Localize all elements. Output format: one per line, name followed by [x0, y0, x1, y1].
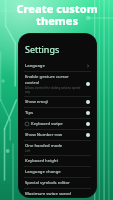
button[interactable]: Keyboard height [19, 156, 96, 167]
button[interactable]: Tips [19, 108, 96, 119]
staticText: Show emoji [25, 99, 49, 105]
staticText: Language change [25, 169, 61, 175]
staticText: Settings [25, 43, 60, 55]
staticText: Tips [25, 110, 34, 116]
staticText: Create custom themes [16, 1, 98, 28]
staticText: Enable gesture cursor control [25, 74, 83, 86]
staticText: Left [25, 149, 31, 153]
staticText: Allows control the sliding actions speed… [25, 86, 83, 94]
button[interactable]: One handed mode [19, 141, 96, 156]
staticText: Language [25, 63, 45, 69]
button[interactable]: Enable gesture cursor control [19, 72, 96, 97]
button[interactable]: Show emoji [19, 97, 96, 108]
staticText: Maximum swipe speed [25, 191, 71, 195]
staticText: Keyboard swipe [31, 121, 63, 127]
button[interactable]: Maximum swipe speed [19, 189, 96, 197]
staticText: Show Number row [25, 132, 63, 138]
button[interactable]: Language change [19, 167, 96, 178]
staticText: Special symbols editor [25, 180, 70, 186]
button[interactable]: Language [19, 61, 96, 72]
staticText: Keyboard height [25, 158, 59, 164]
button[interactable]: Show Number row [19, 130, 96, 141]
button[interactable]: Keyboard swipe [19, 119, 96, 130]
staticText: One handed mode [25, 143, 63, 149]
button[interactable]: Special symbols editor [19, 178, 96, 189]
